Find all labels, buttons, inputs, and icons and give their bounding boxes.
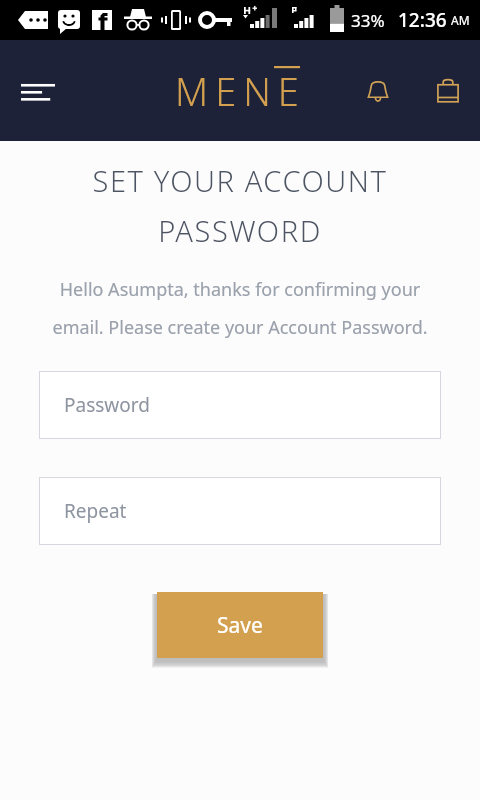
button[interactable]: Shopping bag: [422, 65, 474, 117]
button[interactable]: Notifications: [352, 65, 404, 117]
staticText: Hello Asumpta, thanks for confirming you…: [38, 277, 442, 339]
staticText: Save: [217, 611, 263, 640]
button[interactable]: Save: [157, 592, 323, 658]
staticText: SET YOUR ACCOUNT PASSWORD: [28, 161, 452, 251]
staticText: Repeat: [64, 498, 127, 524]
button[interactable]: Password: [39, 371, 441, 439]
staticText: 33%: [351, 9, 385, 32]
staticText: AM: [451, 12, 470, 28]
staticText: 12:36: [398, 7, 447, 33]
staticText: MENE: [175, 65, 306, 117]
button[interactable]: Menu: [10, 63, 66, 119]
staticText: Password: [64, 392, 150, 418]
button[interactable]: Repeat: [39, 477, 441, 545]
